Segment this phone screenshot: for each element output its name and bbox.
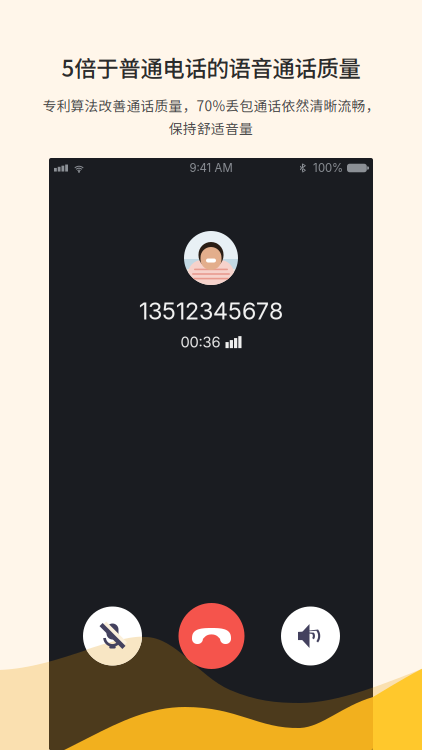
staticText: 00:36 — [180, 333, 220, 351]
staticText: 13512345678 — [139, 297, 283, 325]
button[interactable]: End call — [178, 603, 244, 669]
button[interactable]: Mute — [83, 606, 142, 665]
staticText: 100% — [313, 161, 343, 175]
button[interactable]: Speaker — [281, 606, 340, 665]
staticText: 5倍于普通电话的语音通话质量 — [61, 51, 360, 83]
staticText: 保持舒适音量 — [169, 118, 253, 138]
staticText: 9:41 AM — [189, 161, 232, 175]
staticText: 专利算法改善通话质量，70%丢包通话依然清晰流畅， — [42, 95, 379, 115]
